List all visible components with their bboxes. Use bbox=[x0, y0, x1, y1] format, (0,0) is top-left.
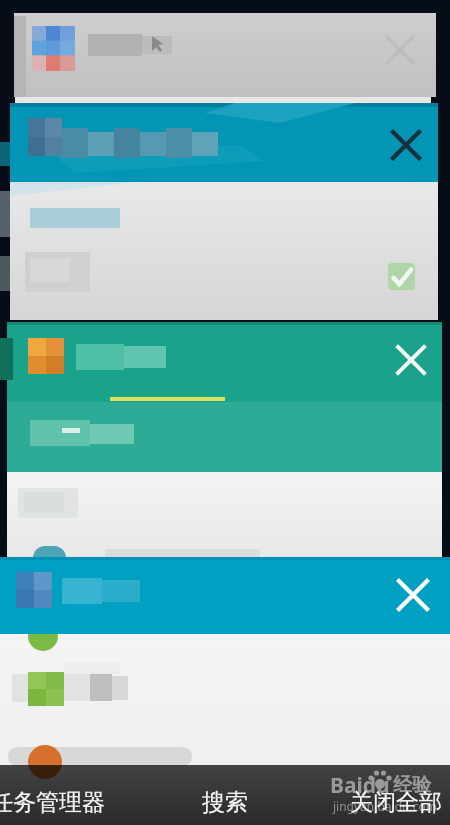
button[interactable]: 关闭全部 bbox=[350, 788, 448, 824]
staticText: 经验 bbox=[393, 773, 431, 797]
button[interactable] bbox=[388, 263, 415, 290]
button[interactable] bbox=[390, 339, 432, 381]
staticText: 任务管理器 bbox=[0, 788, 105, 817]
button[interactable]: 任务管理器 bbox=[0, 788, 120, 824]
staticText: Baidu bbox=[330, 771, 390, 800]
button[interactable] bbox=[379, 29, 421, 71]
button[interactable]: 搜索 bbox=[202, 788, 254, 824]
button[interactable] bbox=[0, 557, 450, 634]
button[interactable] bbox=[7, 322, 442, 402]
button[interactable] bbox=[10, 103, 438, 182]
staticText: 关闭全部 bbox=[350, 788, 442, 817]
staticText: 搜索 bbox=[202, 788, 248, 817]
button[interactable] bbox=[14, 13, 436, 97]
staticText: jingyan.baidu.com bbox=[333, 798, 437, 814]
button[interactable] bbox=[385, 124, 427, 166]
button[interactable] bbox=[391, 573, 435, 617]
